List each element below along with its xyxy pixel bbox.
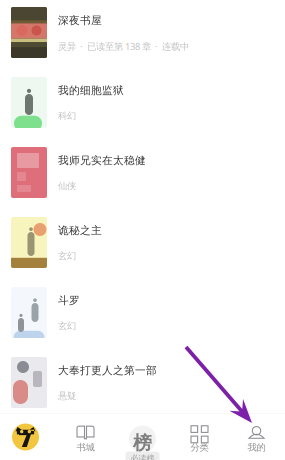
staticText: 诡秘之主 [58,224,102,237]
staticText: 书城 [76,442,94,453]
button[interactable]: 我师兄实在太稳健 [0,137,285,207]
staticText: 榜 [133,431,152,454]
staticText: 悬疑 [58,390,76,402]
staticText: 深夜书屋 [58,14,102,27]
button[interactable]: 诡秘之主 [0,207,285,277]
staticText: 玄幻 [58,320,76,332]
button[interactable]: 书城 [57,414,114,460]
staticText: 科幻 [58,110,76,122]
staticText: 我的 [247,442,265,453]
button[interactable]: 我的 [228,414,285,460]
button[interactable]: 七猫 [0,414,57,460]
button[interactable]: 分类 [171,414,228,460]
button[interactable]: 大奉打更人之第一部 [0,347,285,417]
staticText: 必读榜 [130,453,154,460]
staticText: 大奉打更人之第一部 [58,364,157,377]
staticText: 玄幻 [58,250,76,262]
staticText: 灵异 · 已读至第 138 章 · 连载中 [58,40,189,52]
button[interactable]: 斗罗 [0,277,285,347]
staticText: 我师兄实在太稳健 [58,154,146,167]
staticText: 分类 [190,442,208,453]
button[interactable]: 深夜书屋 [0,0,285,67]
staticText: 斗罗 [58,294,80,307]
button[interactable]: 我的细胞监狱 [0,67,285,137]
staticText: 仙侠 [58,180,76,192]
button[interactable]: 榜 [114,414,171,460]
staticText: 我的细胞监狱 [58,84,124,97]
